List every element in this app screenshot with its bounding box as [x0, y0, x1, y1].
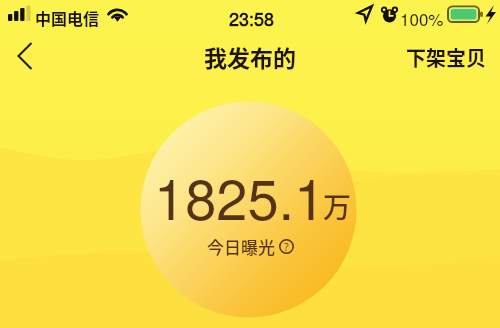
- staticText: 23:58: [229, 5, 275, 31]
- staticText: 下架宝贝: [406, 43, 486, 72]
- button[interactable]: Back: [1, 28, 49, 84]
- button[interactable]: 下架宝贝: [392, 33, 500, 82]
- staticText: 万: [323, 186, 352, 227]
- staticText: ?: [284, 239, 289, 254]
- staticText: 1825.1: [154, 156, 326, 236]
- staticText: 今日曝光: [207, 234, 275, 259]
- staticText: 中国电信: [35, 6, 100, 29]
- staticText: 我发布的: [204, 40, 296, 73]
- staticText: 100%: [400, 6, 444, 30]
